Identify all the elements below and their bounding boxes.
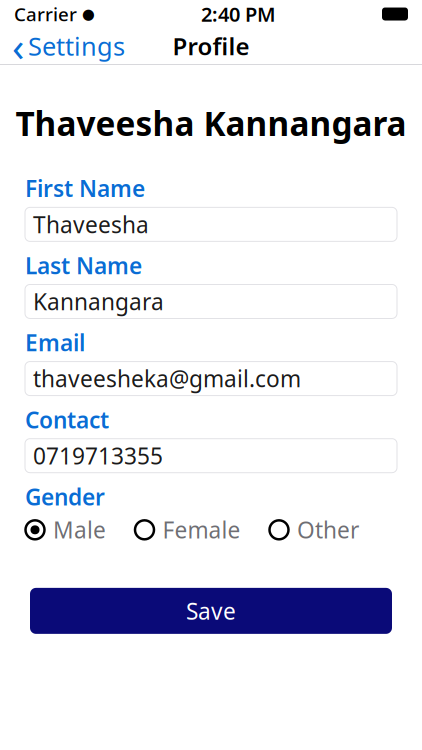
staticText: Kannangara	[33, 286, 164, 316]
staticText: Gender	[25, 482, 105, 512]
staticText: 2:40 PM	[201, 1, 276, 27]
staticText: Thaveesha Kannangara	[15, 101, 406, 145]
staticText: ‹	[12, 19, 24, 72]
staticText: Female	[162, 515, 240, 545]
staticText: Save	[186, 596, 236, 626]
button[interactable]: thaveesheka@gmail.com	[25, 362, 397, 396]
button[interactable]: Other	[269, 515, 359, 545]
staticText: Other	[297, 515, 359, 545]
staticText: Contact	[25, 405, 109, 435]
button[interactable]: Female	[134, 515, 240, 545]
button[interactable]: 0719713355	[25, 439, 397, 473]
staticText: Settings	[28, 29, 125, 63]
staticText: Male	[53, 515, 106, 545]
staticText: Carrier	[14, 2, 77, 26]
staticText: First Name	[25, 173, 145, 203]
staticText: Thaveesha	[33, 209, 149, 239]
staticText: 0719713355	[33, 441, 163, 471]
button[interactable]: Save	[30, 588, 392, 634]
button[interactable]: Thaveesha	[25, 207, 397, 241]
staticText: Profile	[172, 30, 249, 62]
button[interactable]: ‹	[0, 19, 137, 72]
staticText: thaveesheka@gmail.com	[33, 363, 301, 394]
staticText: ●	[82, 6, 95, 22]
staticText: Email	[25, 327, 85, 358]
button[interactable]: Male	[25, 515, 106, 545]
button[interactable]: Kannangara	[25, 284, 397, 318]
staticText: Last Name	[25, 250, 142, 280]
